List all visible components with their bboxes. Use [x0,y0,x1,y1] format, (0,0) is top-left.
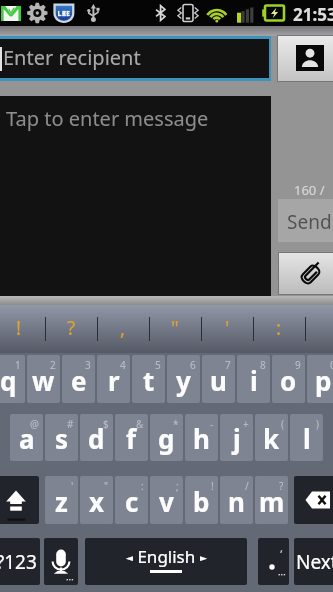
staticText: , [280,540,283,555]
button[interactable]: j [220,414,253,461]
button[interactable]: c [115,476,148,524]
button[interactable]: Shift [0,476,39,524]
button[interactable]: i [237,355,270,403]
button[interactable]: u [202,355,235,403]
button[interactable]: Next [294,538,333,585]
staticText: s [55,421,69,456]
staticText: Next [296,549,333,575]
staticText: ? [67,315,76,341]
staticText: e [71,363,87,398]
staticText: q [0,363,17,398]
button[interactable]: Attach [279,253,333,294]
button[interactable]: ' [201,305,253,353]
staticText: ) [316,417,319,431]
staticText: 160 / [294,181,325,199]
staticText: $ [103,417,109,431]
staticText: 1 [15,358,21,372]
staticText: : [276,315,282,341]
button[interactable]: w [27,355,60,403]
staticText: v [159,484,174,519]
staticText: ?123 [0,549,37,575]
button[interactable]: ! [0,305,45,353]
button[interactable]: Voice input [44,538,78,585]
staticText: b [193,484,210,519]
button[interactable]: g [150,414,183,461]
button[interactable]: b [185,476,218,524]
button[interactable]: Space [85,538,247,585]
button[interactable]: Backspace [294,476,333,524]
staticText: / [245,479,249,493]
staticText: 8 [260,358,266,372]
staticText: d [88,421,105,456]
staticText: , [120,315,126,341]
staticText: 4 [120,358,126,372]
staticText: Enter recipient [3,44,141,71]
button[interactable]: a [10,414,43,461]
button[interactable]: n [220,476,253,524]
button[interactable]: y [167,355,200,403]
button[interactable]: e [62,355,95,403]
staticText: l [303,421,311,456]
staticText: " [171,315,179,341]
button[interactable]: Tap to enter message [0,96,271,296]
staticText: & [136,417,144,431]
staticText: 6 [190,358,196,372]
staticText: + [243,417,249,431]
button[interactable]: p [307,355,333,403]
staticText: English [133,545,200,568]
button[interactable]: z [45,476,78,524]
staticText: : [141,479,144,493]
staticText: u [210,363,227,398]
button[interactable]: , [97,305,149,353]
button[interactable]: m [255,476,288,524]
button[interactable]: k [255,414,288,461]
staticText: 5 [155,358,161,372]
staticText: w [32,363,55,398]
staticText: ! [211,479,214,493]
staticText: ( [281,417,284,431]
button[interactable]: Pick contact [278,36,333,81]
staticText: 9 [295,358,301,372]
staticText: h [193,421,210,456]
staticText: x [89,484,105,519]
staticText: * [173,417,179,431]
staticText: ' [225,315,230,341]
staticText: z [55,484,68,519]
button[interactable]: : [253,305,305,353]
button[interactable]: f [115,414,148,461]
staticText: ? [279,479,284,493]
button[interactable]: x [80,476,113,524]
button[interactable]: ?123 [0,538,40,585]
button[interactable]: l [290,414,323,461]
staticText: ! [16,315,22,341]
staticText: Send [287,209,332,235]
staticText: 7 [225,358,231,372]
button[interactable]: r [97,355,130,403]
staticText: 21:53 [293,3,333,26]
button[interactable]: o [272,355,305,403]
button[interactable]: ? [45,305,97,353]
staticText: j [233,421,241,456]
button[interactable]: Enter recipient [0,36,271,81]
button[interactable]: q [0,355,25,403]
staticText: y [176,363,191,398]
staticText: " [104,479,109,493]
button[interactable]: t [132,355,165,403]
button[interactable]: d [80,414,113,461]
button[interactable]: h [185,414,218,461]
staticText: ' [71,479,74,493]
button[interactable]: " [149,305,201,353]
staticText: @ [30,417,39,431]
staticText: c [125,484,139,519]
button[interactable] [305,305,333,353]
staticText: p [315,363,332,398]
staticText: - [210,417,214,431]
staticText: t [143,363,155,398]
staticText: a [19,421,35,456]
staticText: 2 [50,358,56,372]
button[interactable]: v [150,476,183,524]
button[interactable]: Send [278,199,333,242]
button[interactable]: Period [258,538,289,585]
button[interactable]: s [45,414,78,461]
staticText: Tap to enter message [6,105,209,132]
